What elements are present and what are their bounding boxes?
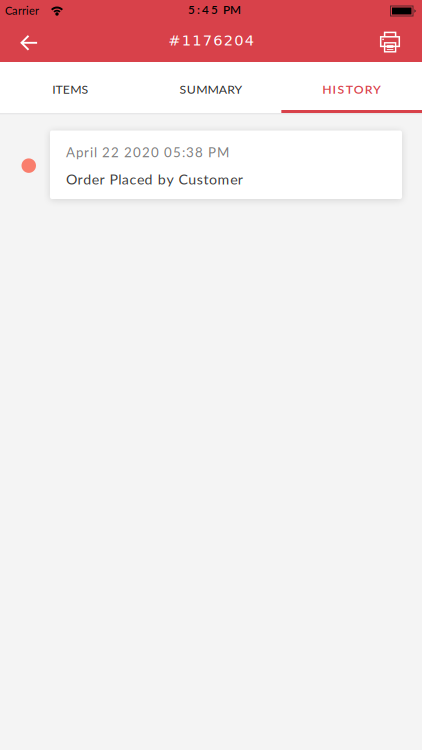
- staticText: #1176204: [168, 32, 254, 49]
- button[interactable]: SUMMARY: [141, 62, 281, 113]
- staticText: Carrier: [5, 4, 39, 17]
- button[interactable]: Back: [0, 22, 48, 62]
- staticText: April 22 2020 05:38 PM: [66, 144, 229, 160]
- staticText: 5 : 4 5 PM: [188, 2, 241, 17]
- staticText: SUMMARY: [179, 82, 243, 96]
- staticText: HISTORY: [322, 82, 381, 96]
- button[interactable]: HISTORY: [281, 62, 422, 113]
- button[interactable]: ITEMS: [0, 62, 141, 113]
- button[interactable]: Print: [370, 22, 422, 61]
- staticText: Order Placed by Customer: [66, 170, 243, 187]
- staticText: ITEMS: [52, 82, 88, 96]
